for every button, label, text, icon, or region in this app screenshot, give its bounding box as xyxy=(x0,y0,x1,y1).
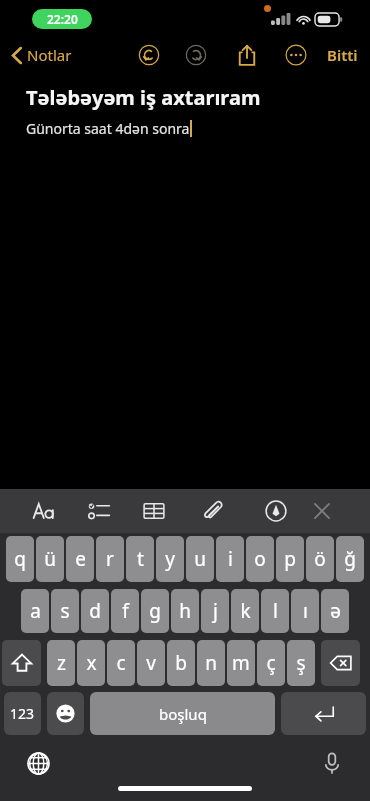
staticText: a xyxy=(30,598,41,624)
button[interactable]: p xyxy=(276,536,304,582)
staticText: ö xyxy=(314,546,326,572)
button[interactable]: Shift xyxy=(2,640,41,686)
staticText: boşluq xyxy=(159,704,207,724)
button[interactable]: l xyxy=(261,589,289,633)
button[interactable]: s xyxy=(51,589,79,633)
staticText: i xyxy=(228,546,233,572)
button[interactable]: ı xyxy=(291,589,319,633)
button[interactable]: Undo xyxy=(134,40,164,70)
staticText: k xyxy=(240,598,251,624)
button[interactable]: n xyxy=(197,640,225,686)
staticText: h xyxy=(179,598,191,624)
button[interactable]: Hide keyboard xyxy=(306,489,338,533)
button[interactable]: ş xyxy=(287,640,315,686)
button[interactable]: Backspace xyxy=(321,640,360,686)
staticText: e xyxy=(75,546,86,572)
button[interactable]: v xyxy=(137,640,165,686)
button[interactable]: z xyxy=(47,640,75,686)
staticText: ğ xyxy=(344,546,356,572)
staticText: g xyxy=(149,598,161,624)
button[interactable]: q xyxy=(6,536,34,582)
button[interactable]: Notlar xyxy=(8,36,76,74)
staticText: m xyxy=(232,650,250,676)
staticText: 123 xyxy=(10,704,35,723)
staticText: Bitti xyxy=(327,45,358,65)
staticText: r xyxy=(106,546,114,572)
button[interactable]: f xyxy=(111,589,139,633)
staticText: c xyxy=(116,650,126,676)
button[interactable]: Text format xyxy=(28,489,60,533)
button[interactable]: Dictate xyxy=(312,743,352,783)
button[interactable]: Change keyboard xyxy=(18,743,58,783)
button[interactable]: ğ xyxy=(336,536,364,582)
button[interactable]: Markup xyxy=(260,489,292,533)
button[interactable]: x xyxy=(77,640,105,686)
button[interactable]: Bitti xyxy=(320,36,364,74)
button[interactable]: b xyxy=(167,640,195,686)
button[interactable]: Emoji xyxy=(47,692,84,735)
button[interactable]: Attach xyxy=(197,489,229,533)
staticText: j xyxy=(213,598,218,624)
staticText: q xyxy=(14,546,26,572)
button[interactable]: Checklist xyxy=(83,489,115,533)
staticText: 22:20 xyxy=(47,11,78,27)
staticText: o xyxy=(254,546,266,572)
button[interactable]: y xyxy=(156,536,184,582)
button[interactable]: 123 xyxy=(4,692,41,735)
button[interactable]: ö xyxy=(306,536,334,582)
button[interactable]: m xyxy=(227,640,255,686)
staticText: d xyxy=(89,598,101,624)
staticText: p xyxy=(284,546,296,572)
button[interactable]: Redo xyxy=(181,40,211,70)
button[interactable]: Share xyxy=(232,40,262,70)
button[interactable]: ə xyxy=(321,589,349,633)
button[interactable]: j xyxy=(201,589,229,633)
button[interactable]: k xyxy=(231,589,259,633)
staticText: x xyxy=(86,650,97,676)
button[interactable]: Return xyxy=(281,692,366,735)
staticText: y xyxy=(165,546,175,572)
staticText: ı xyxy=(303,598,308,624)
staticText: ç xyxy=(266,650,276,676)
button[interactable]: boşluq xyxy=(90,692,275,735)
button[interactable]: e xyxy=(66,536,94,582)
staticText: f xyxy=(122,598,129,624)
staticText: Notlar xyxy=(27,45,72,65)
staticText: z xyxy=(57,650,66,676)
staticText: ü xyxy=(44,546,56,572)
staticText: b xyxy=(175,650,187,676)
staticText: Tələbəyəm iş axtarıram xyxy=(26,84,261,111)
button[interactable]: o xyxy=(246,536,274,582)
button[interactable]: d xyxy=(81,589,109,633)
button[interactable]: i xyxy=(216,536,244,582)
staticText: ə xyxy=(330,598,341,624)
button[interactable]: ç xyxy=(257,640,285,686)
button[interactable]: c xyxy=(107,640,135,686)
staticText: t xyxy=(137,546,144,572)
button[interactable]: t xyxy=(126,536,154,582)
button[interactable]: u xyxy=(186,536,214,582)
button[interactable]: h xyxy=(171,589,199,633)
staticText: s xyxy=(60,598,70,624)
button[interactable]: r xyxy=(96,536,124,582)
button[interactable]: a xyxy=(21,589,49,633)
staticText: u xyxy=(194,546,206,572)
staticText: Günorta saat 4dən sonra xyxy=(26,119,190,138)
button[interactable]: g xyxy=(141,589,169,633)
staticText: ş xyxy=(296,650,306,676)
staticText: v xyxy=(146,650,156,676)
staticText: n xyxy=(205,650,217,676)
button[interactable]: Table xyxy=(138,489,170,533)
button[interactable]: More options xyxy=(281,40,311,70)
button[interactable]: ü xyxy=(36,536,64,582)
staticText: l xyxy=(273,598,278,624)
